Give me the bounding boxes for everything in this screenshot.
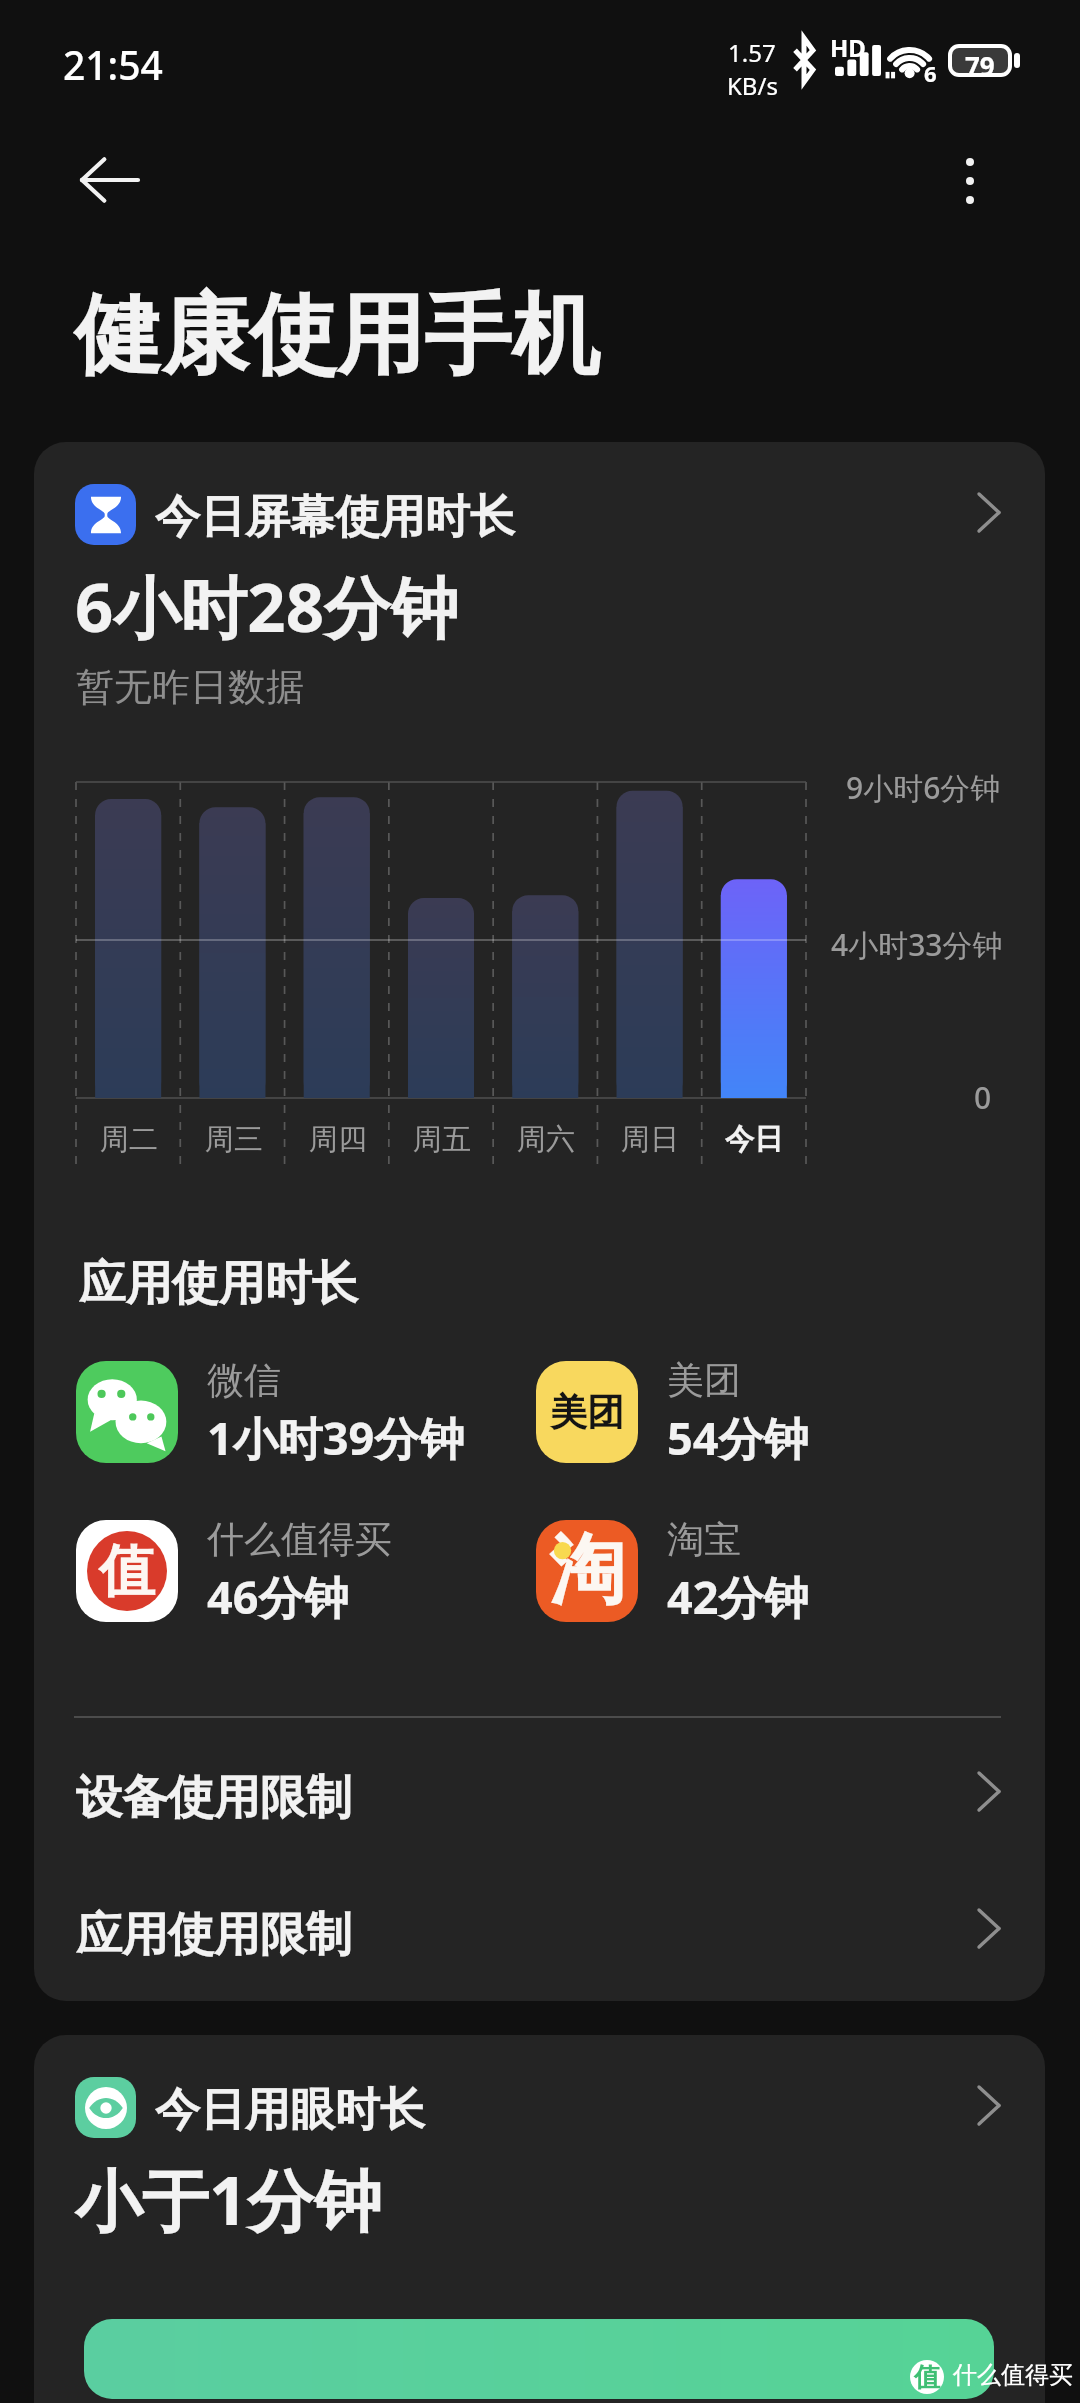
staticText: 应用使用时长 — [79, 1254, 358, 1313]
staticText: 微信 — [207, 1357, 281, 1404]
staticText: 1小时39分钟 — [207, 1407, 465, 1467]
staticText: 9小时6分钟 — [846, 767, 1001, 808]
staticText: 今日屏幕使用时长 — [155, 489, 515, 546]
button[interactable]: 今日屏幕使用时长 — [34, 442, 1045, 558]
staticText: 美团 — [550, 1389, 624, 1436]
button[interactable]: Back — [73, 144, 145, 216]
button[interactable]: 应用使用限制 — [34, 1864, 1045, 2001]
staticText: 周四 — [309, 1121, 367, 1158]
staticText: 4小时33分钟 — [831, 924, 1003, 965]
staticText: 值 — [99, 1536, 155, 1607]
staticText: 周五 — [413, 1121, 471, 1158]
staticText: 42分钟 — [667, 1566, 809, 1626]
staticText: 周日 — [621, 1121, 679, 1158]
staticText: 暂无昨日数据 — [76, 663, 304, 711]
button[interactable]: 设备使用限制 — [34, 1727, 1045, 1864]
staticText: 小于1分钟 — [75, 2153, 382, 2245]
staticText: 健康使用手机 — [74, 281, 599, 391]
staticText: 1.57 — [728, 36, 776, 69]
staticText: 79 — [965, 48, 995, 73]
button[interactable]: 今日用眼时长 — [34, 2035, 1045, 2151]
button[interactable]: More options — [930, 141, 1010, 221]
staticText: 什么值得买 — [953, 2360, 1073, 2390]
staticText: HD — [830, 31, 866, 64]
staticText: KB/s — [727, 69, 778, 102]
staticText: 什么值得买 — [207, 1516, 392, 1563]
staticText: 周二 — [100, 1121, 158, 1158]
staticText: 今日用眼时长 — [155, 2082, 425, 2139]
staticText: 6小时28分钟 — [75, 560, 458, 652]
staticText: 今日 — [725, 1121, 783, 1158]
staticText: 21:54 — [63, 38, 163, 91]
staticText: 0 — [974, 1077, 992, 1118]
staticText: 淘 — [549, 1523, 625, 1619]
staticText: 淘宝 — [667, 1516, 741, 1563]
staticText: 应用使用限制 — [76, 1906, 352, 1964]
staticText: 周六 — [517, 1121, 575, 1158]
staticText: 46分钟 — [207, 1566, 349, 1626]
staticText: 周三 — [205, 1121, 263, 1158]
staticText: 54分钟 — [667, 1407, 809, 1467]
staticText: 美团 — [667, 1357, 741, 1404]
button[interactable]: 值 — [76, 1516, 536, 1626]
button[interactable]: 微信 — [76, 1357, 536, 1467]
button[interactable]: 美团 — [536, 1357, 996, 1467]
staticText: 6 — [924, 58, 937, 88]
staticText: 值 — [914, 2361, 940, 2394]
staticText: 设备使用限制 — [76, 1769, 352, 1827]
button[interactable]: 淘 — [536, 1516, 996, 1626]
